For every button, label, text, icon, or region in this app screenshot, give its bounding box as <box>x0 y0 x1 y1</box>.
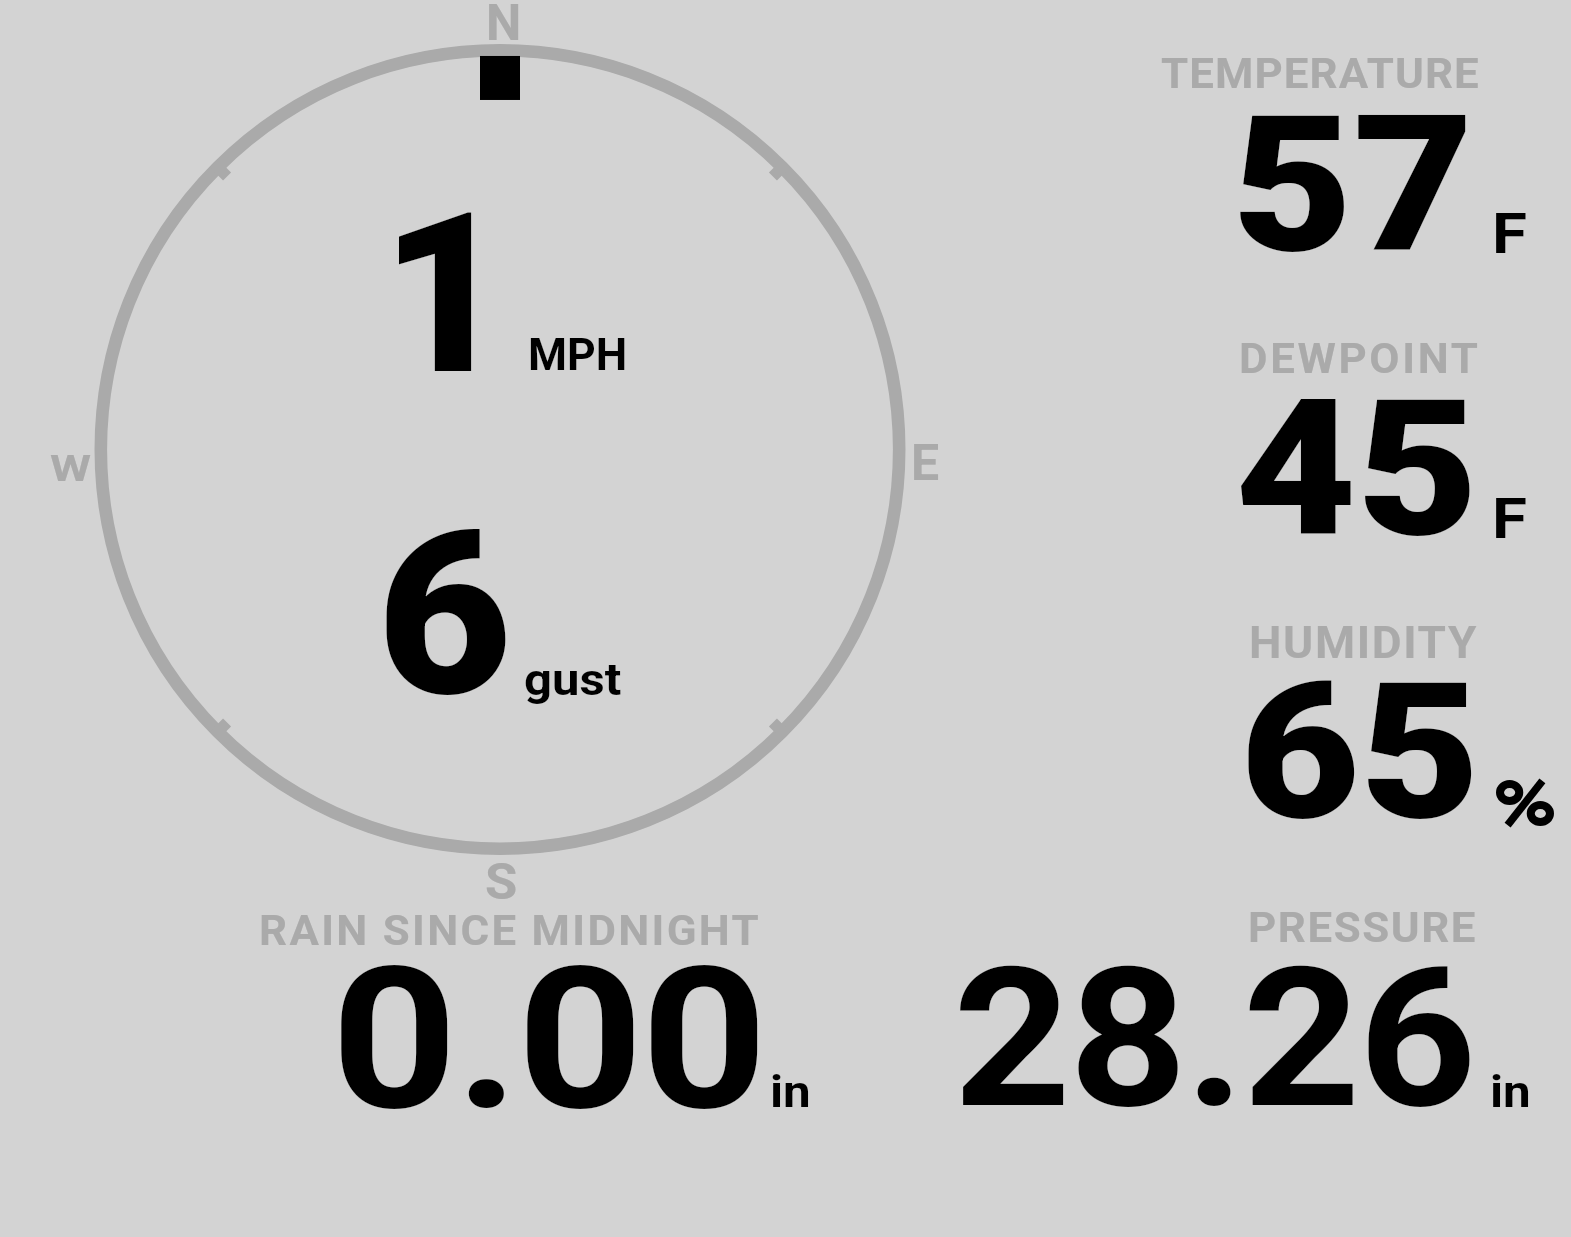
staticText: DEWPOINT <box>1239 333 1481 383</box>
staticText: MPH <box>528 328 628 381</box>
staticText: 65 <box>1240 641 1481 864</box>
staticText: N <box>486 0 522 53</box>
button[interactable]: Wind speed 1 mile per hour <box>360 180 660 390</box>
staticText: RAIN SINCE MIDNIGHT <box>259 905 762 955</box>
staticText: W <box>50 446 91 490</box>
button[interactable]: Pressure 28.26 inches of mercury <box>940 895 1571 1123</box>
button[interactable]: Wind gust 6 miles per hour <box>360 500 660 715</box>
staticText: PRESSURE <box>1248 902 1477 952</box>
staticText: 57 <box>1232 74 1475 297</box>
button[interactable]: Wind direction compass, north <box>80 0 920 910</box>
staticText: 0.00 <box>331 925 766 1155</box>
staticText: 45 <box>1235 358 1479 581</box>
staticText: HUMIDITY <box>1249 616 1478 669</box>
staticText: E <box>911 434 940 493</box>
staticText: F <box>1492 487 1528 551</box>
staticText: S <box>485 853 517 912</box>
staticText: in <box>1490 1066 1531 1118</box>
button[interactable]: Dew point 45 degrees Fahrenheit <box>1150 325 1571 560</box>
staticText: in <box>770 1066 811 1118</box>
staticText: F <box>1492 202 1528 266</box>
staticText: 1 <box>381 164 510 425</box>
button[interactable]: Humidity 65 percent <box>1150 608 1571 843</box>
staticText: TEMPERATURE <box>1161 48 1480 98</box>
button[interactable]: Temperature 57 degrees Fahrenheit <box>1150 40 1571 275</box>
staticText: 6 <box>377 483 512 748</box>
button[interactable]: Rain since midnight 0.00 inches <box>250 898 830 1123</box>
staticText: 28.26 <box>953 926 1475 1152</box>
staticText: gust <box>524 653 622 706</box>
